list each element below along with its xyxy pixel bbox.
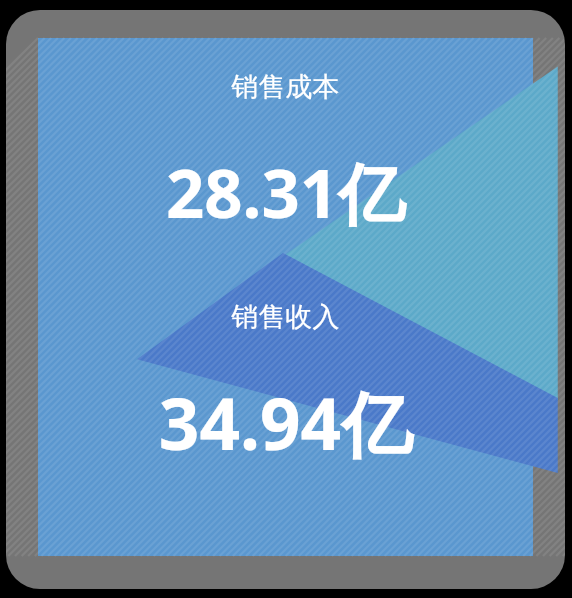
staticText: 销售收入 <box>38 300 533 334</box>
button[interactable]: Sales summary tile <box>38 38 533 556</box>
staticText: 28.31亿 <box>38 146 533 238</box>
staticText: 34.94亿 <box>38 374 533 471</box>
staticText: 销售成本 <box>38 70 533 104</box>
